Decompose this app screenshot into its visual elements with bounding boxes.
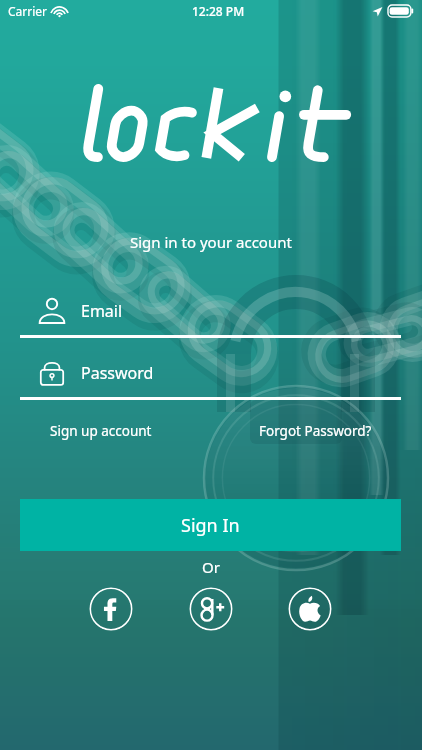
button[interactable]: Sign in with Apple bbox=[288, 587, 332, 631]
staticText: Or bbox=[202, 557, 220, 577]
button[interactable]: Sign in with Google Plus bbox=[189, 587, 233, 631]
staticText: Sign up account bbox=[50, 422, 152, 440]
staticText: 12:28 PM bbox=[192, 3, 245, 19]
staticText: Carrier bbox=[8, 3, 48, 19]
button[interactable]: Sign up account bbox=[46, 416, 156, 446]
button[interactable]: Sign in with Facebook bbox=[89, 587, 133, 631]
staticText: Email bbox=[81, 300, 123, 322]
button[interactable]: Password bbox=[20, 358, 401, 400]
button[interactable]: Email bbox=[20, 296, 401, 338]
staticText: Password bbox=[81, 362, 154, 384]
staticText: Sign In bbox=[181, 513, 240, 538]
staticText: Sign in to your account bbox=[130, 232, 292, 252]
staticText: Forgot Password? bbox=[259, 422, 372, 440]
button[interactable]: Sign In bbox=[20, 499, 401, 551]
button[interactable]: Forgot Password? bbox=[255, 416, 376, 446]
